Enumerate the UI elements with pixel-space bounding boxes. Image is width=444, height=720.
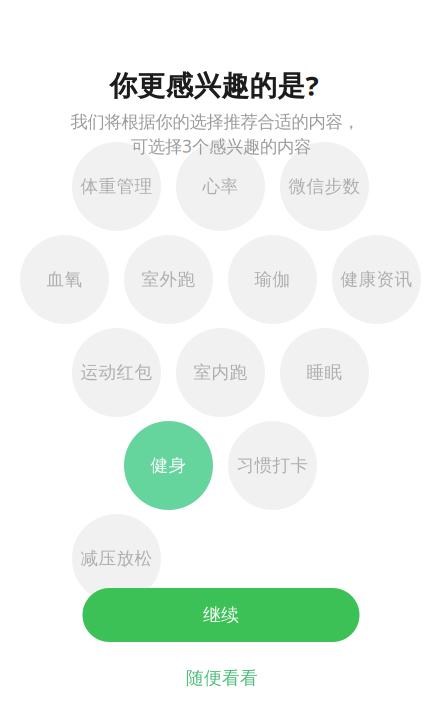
button[interactable]: 随便看看 xyxy=(186,667,258,689)
staticText: 瑜伽 xyxy=(254,268,290,291)
staticText: 健身 xyxy=(150,454,186,477)
staticText: 微信步数 xyxy=(288,175,360,198)
button[interactable]: 体重管理 xyxy=(72,142,161,231)
staticText: 减压放松 xyxy=(80,547,152,570)
staticText: 习惯打卡 xyxy=(236,454,308,477)
button[interactable]: 室内跑 xyxy=(176,328,265,417)
staticText: 健康资讯 xyxy=(340,268,412,291)
staticText: 运动红包 xyxy=(80,361,152,384)
button[interactable]: 健身 xyxy=(124,421,213,510)
button[interactable]: 运动红包 xyxy=(72,328,161,417)
button[interactable]: 睡眠 xyxy=(280,328,369,417)
button[interactable]: 微信步数 xyxy=(280,142,369,231)
staticText: 你更感兴趣的是? xyxy=(109,66,318,104)
button[interactable]: 心率 xyxy=(176,142,265,231)
staticText: 继续 xyxy=(203,604,239,626)
staticText: 室内跑 xyxy=(193,361,247,384)
staticText: 室外跑 xyxy=(141,268,195,291)
staticText: 心率 xyxy=(202,175,238,198)
staticText: 随便看看 xyxy=(186,667,258,689)
button[interactable]: 室外跑 xyxy=(124,235,213,324)
button[interactable]: 继续 xyxy=(82,588,359,642)
staticText: 睡眠 xyxy=(306,361,342,384)
button[interactable]: 瑜伽 xyxy=(228,235,317,324)
staticText: 可选择3个感兴趣的内容 xyxy=(131,134,311,158)
button[interactable]: 习惯打卡 xyxy=(228,421,317,510)
button[interactable]: 健康资讯 xyxy=(332,235,421,324)
staticText: 体重管理 xyxy=(80,175,152,198)
staticText: 血氧 xyxy=(46,268,82,291)
button[interactable]: 血氧 xyxy=(20,235,109,324)
staticText: 我们将根据你的选择推荐合适的内容， xyxy=(70,111,359,133)
button[interactable]: 减压放松 xyxy=(72,514,161,603)
